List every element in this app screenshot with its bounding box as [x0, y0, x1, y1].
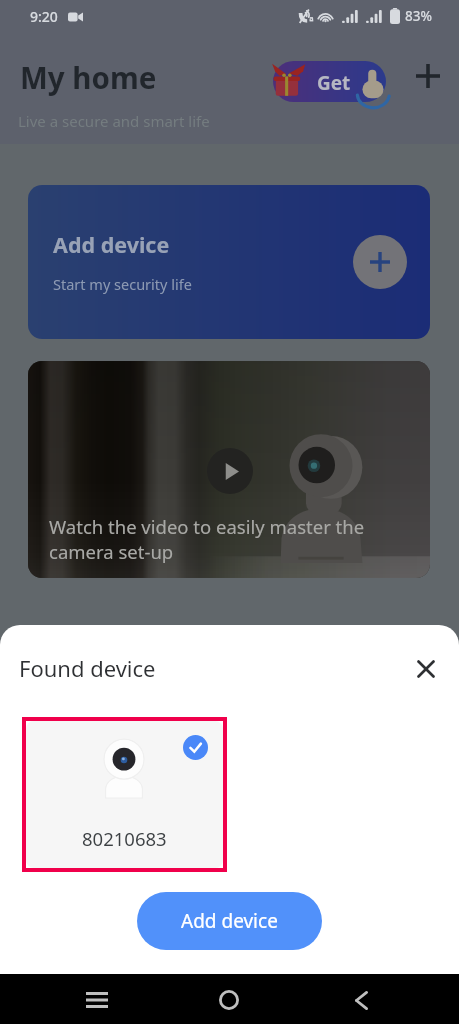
staticText: 80210683 [82, 826, 167, 851]
button[interactable]: Add device [137, 892, 322, 950]
button[interactable]: Home [204, 975, 254, 1024]
button[interactable]: Add [408, 56, 448, 96]
staticText: Get [317, 70, 351, 96]
button[interactable]: Close [409, 652, 443, 686]
staticText: Add device [181, 908, 278, 934]
staticText: 9:20 [30, 7, 58, 26]
staticText: My home [20, 57, 157, 97]
staticText: Add device [53, 230, 170, 259]
button[interactable]: Play video [207, 448, 253, 494]
button[interactable]: Back [336, 975, 386, 1024]
button[interactable]: Get [258, 55, 398, 105]
button[interactable]: 80210683 [26, 721, 223, 868]
staticText: 83% [405, 7, 432, 25]
button[interactable]: Add device [28, 185, 430, 339]
staticText: Start my security life [53, 274, 192, 294]
staticText: Watch the video to easily master the [49, 514, 365, 539]
staticText: Found device [19, 653, 156, 683]
button[interactable]: Recents [72, 975, 122, 1024]
staticText: camera set-up [49, 539, 174, 564]
staticText: Live a secure and smart life [18, 111, 210, 131]
button[interactable]: Play video [28, 361, 430, 578]
